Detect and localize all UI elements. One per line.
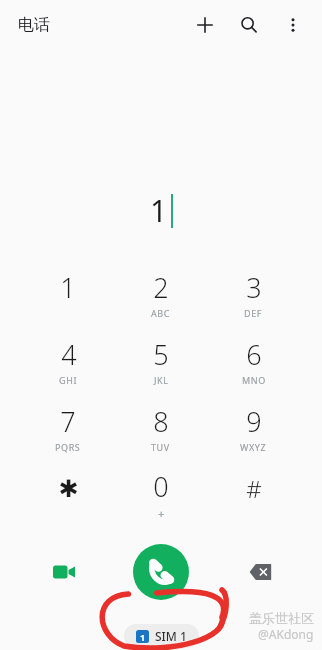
staticText: 4: [61, 336, 77, 373]
staticText: 1: [150, 190, 168, 231]
button[interactable]: Backspace: [238, 550, 282, 594]
button[interactable]: 5: [114, 327, 207, 394]
button[interactable]: 4: [22, 327, 114, 394]
button[interactable]: ✱: [22, 461, 114, 528]
button[interactable]: Video call: [42, 550, 86, 594]
staticText: DEF: [244, 307, 263, 319]
staticText: 6: [246, 336, 262, 373]
staticText: MNO: [242, 374, 266, 386]
staticText: 0: [153, 468, 169, 505]
staticText: ABC: [151, 307, 171, 319]
button[interactable]: #: [207, 461, 300, 528]
button[interactable]: Add contact: [188, 8, 222, 42]
staticText: 3: [246, 269, 262, 306]
staticText: 1: [140, 631, 146, 643]
button[interactable]: More options: [276, 8, 310, 42]
button[interactable]: 7: [22, 394, 114, 461]
button[interactable]: 3: [207, 260, 300, 327]
staticText: PQRS: [55, 441, 81, 453]
staticText: 8: [153, 403, 169, 440]
button[interactable]: 2: [114, 260, 207, 327]
staticText: @AKdong: [258, 626, 314, 642]
staticText: 盖乐世社区: [249, 610, 314, 626]
staticText: 5: [153, 336, 169, 373]
staticText: ✱: [58, 475, 79, 503]
staticText: TUV: [151, 441, 170, 453]
button[interactable]: 1: [124, 624, 199, 648]
staticText: 1: [60, 269, 76, 306]
staticText: 9: [246, 403, 262, 440]
button[interactable]: Call: [133, 544, 189, 600]
staticText: WXYZ: [240, 441, 267, 453]
staticText: 电话: [18, 15, 50, 35]
staticText: JKL: [154, 374, 169, 386]
staticText: #: [246, 472, 262, 505]
button[interactable]: 9: [207, 394, 300, 461]
button[interactable]: 0: [114, 461, 207, 528]
staticText: GHI: [59, 374, 78, 386]
button[interactable]: 8: [114, 394, 207, 461]
staticText: +: [158, 506, 165, 521]
button[interactable]: Search: [232, 8, 266, 42]
button[interactable]: 1: [22, 260, 114, 327]
staticText: SIM 1: [155, 628, 187, 644]
button[interactable]: 6: [207, 327, 300, 394]
staticText: 2: [153, 269, 169, 306]
staticText: 7: [60, 403, 76, 440]
